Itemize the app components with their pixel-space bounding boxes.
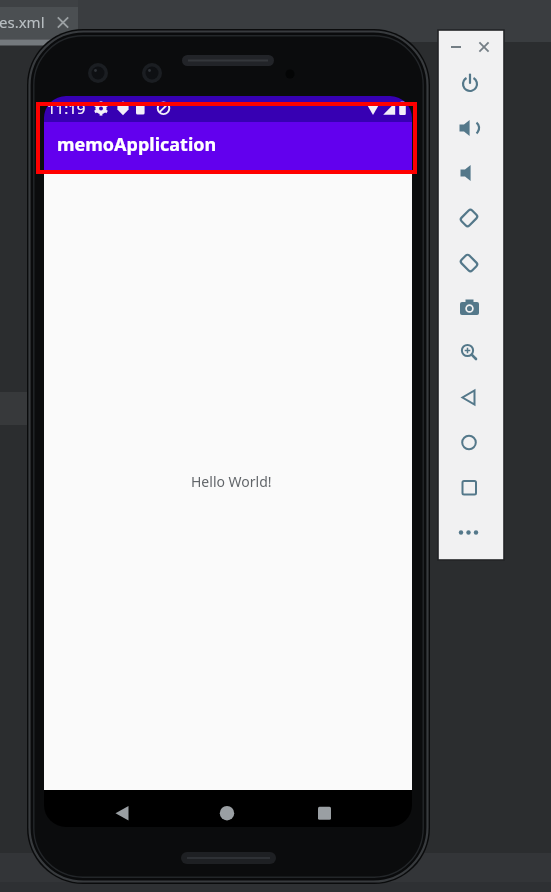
button[interactable] <box>456 160 484 188</box>
button[interactable] <box>456 474 484 502</box>
button[interactable] <box>448 38 464 54</box>
button[interactable] <box>476 38 492 54</box>
button[interactable] <box>456 70 484 98</box>
button[interactable] <box>456 384 484 412</box>
button[interactable] <box>456 294 484 322</box>
button[interactable] <box>456 429 484 457</box>
button[interactable] <box>456 339 484 367</box>
button[interactable] <box>456 115 484 143</box>
button[interactable] <box>456 519 484 547</box>
button[interactable] <box>456 250 484 278</box>
staticText: 11:19 <box>47 98 86 118</box>
button[interactable] <box>311 800 337 826</box>
button[interactable] <box>0 7 78 40</box>
staticText: es.xml <box>0 12 45 32</box>
button[interactable] <box>214 800 240 826</box>
button[interactable] <box>456 205 484 233</box>
button[interactable] <box>110 800 136 826</box>
staticText: memoApplication <box>57 132 217 157</box>
staticText: Hello World! <box>191 472 272 491</box>
